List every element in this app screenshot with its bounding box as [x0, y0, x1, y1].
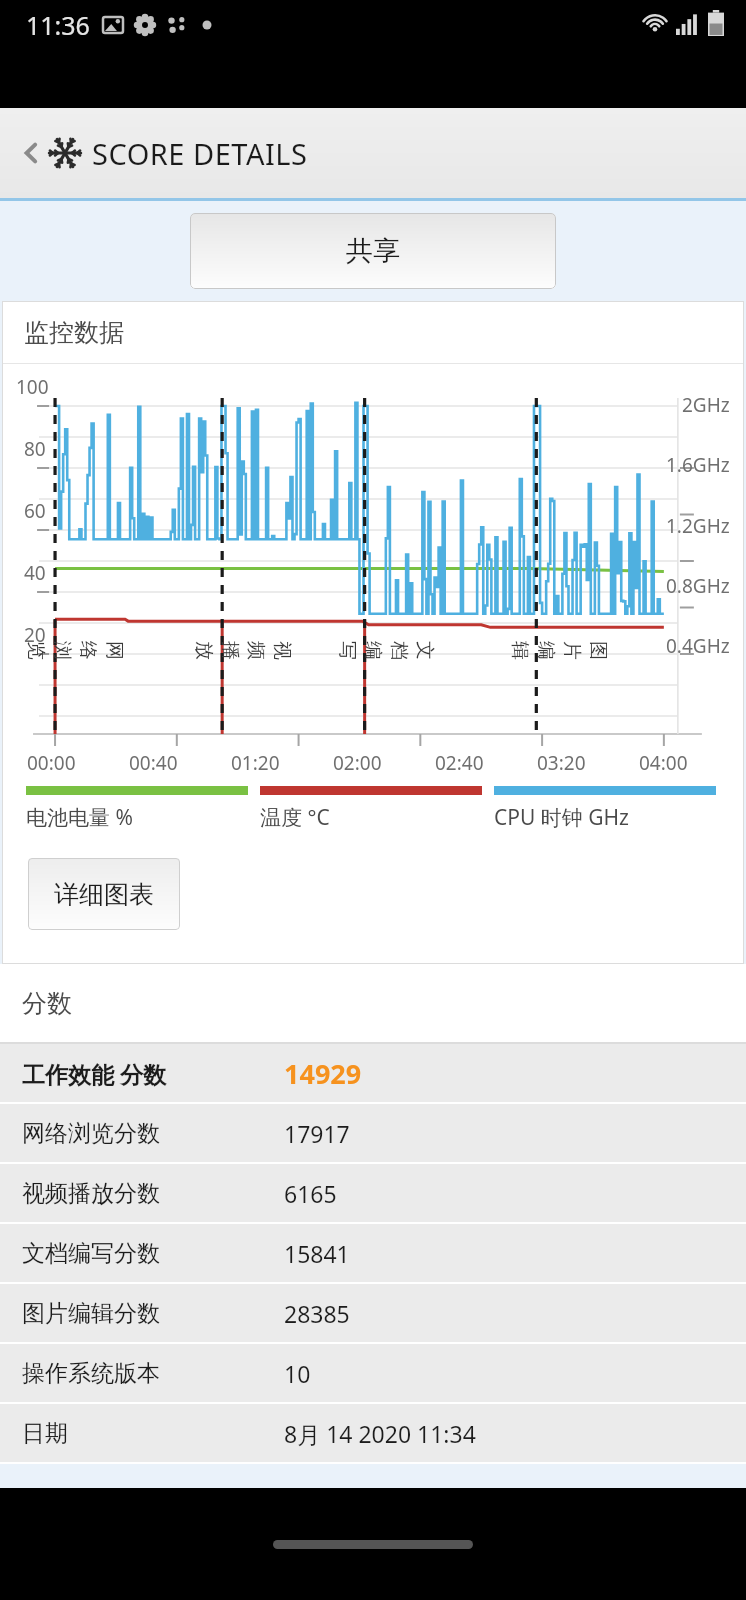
staticText: 0.8GHz: [666, 573, 730, 599]
staticText: 60: [24, 498, 46, 524]
staticText: CPU 时钟 GHz: [494, 803, 629, 832]
staticText: 40: [24, 560, 46, 586]
button[interactable]: Back: [14, 136, 48, 170]
staticText: 分数: [22, 988, 72, 1019]
staticText: 8月 14 2020 11:34: [284, 1418, 476, 1449]
staticText: 文档编写: [335, 641, 437, 665]
button[interactable]: 图片编辑分数: [0, 1284, 746, 1344]
button[interactable]: 共享: [190, 213, 556, 289]
staticText: 04:00: [639, 750, 688, 776]
staticText: 02:00: [333, 750, 382, 776]
staticText: 网络浏览分数: [22, 1119, 284, 1148]
staticText: 10: [284, 1358, 311, 1389]
staticText: 图片编辑: [508, 641, 610, 665]
staticText: 15841: [284, 1238, 350, 1269]
staticText: 1.6GHz: [666, 452, 730, 478]
staticText: 01:20: [231, 750, 280, 776]
staticText: 视频播放: [192, 641, 294, 665]
staticText: SCORE DETAILS: [92, 134, 308, 173]
button[interactable]: 详细图表: [28, 858, 180, 930]
staticText: 03:20: [537, 750, 586, 776]
button[interactable]: 网络浏览分数: [0, 1104, 746, 1164]
staticText: 6165: [284, 1178, 337, 1209]
staticText: 28385: [284, 1298, 350, 1329]
staticText: 网络浏览: [24, 641, 126, 665]
button[interactable]: 操作系统版本: [0, 1344, 746, 1404]
button[interactable]: 日期: [0, 1404, 746, 1464]
button[interactable]: 文档编写分数: [0, 1224, 746, 1284]
staticText: 电池电量 %: [26, 803, 133, 832]
staticText: 监控数据: [24, 317, 124, 348]
staticText: 02:40: [435, 750, 484, 776]
staticText: 20: [24, 622, 46, 648]
staticText: 0.4GHz: [666, 633, 730, 659]
staticText: 11:36: [26, 8, 90, 42]
staticText: 温度 °C: [260, 803, 330, 832]
button[interactable]: 视频播放分数: [0, 1164, 746, 1224]
staticText: 图片编辑分数: [22, 1299, 284, 1328]
staticText: 00:40: [129, 750, 178, 776]
staticText: 14929: [284, 1055, 362, 1092]
staticText: 详细图表: [54, 879, 154, 910]
staticText: 工作效能 分数: [22, 1058, 284, 1089]
staticText: 2GHz: [682, 392, 730, 418]
staticText: 00:00: [27, 750, 76, 776]
staticText: 视频播放分数: [22, 1179, 284, 1208]
staticText: 1.2GHz: [666, 513, 730, 539]
button[interactable]: 工作效能 分数: [0, 1044, 746, 1104]
staticText: 日期: [22, 1419, 284, 1448]
staticText: 共享: [346, 234, 400, 268]
staticText: 17917: [284, 1118, 350, 1149]
staticText: 100: [16, 374, 49, 400]
staticText: 文档编写分数: [22, 1239, 284, 1268]
staticText: 80: [24, 436, 46, 462]
staticText: 操作系统版本: [22, 1359, 284, 1388]
